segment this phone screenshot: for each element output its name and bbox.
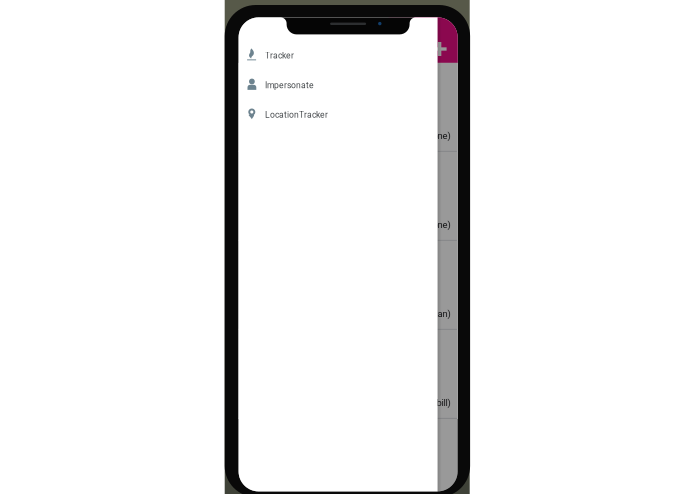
staticText: Impersonate: [265, 80, 314, 90]
button[interactable]: Tracker: [239, 40, 438, 69]
button[interactable]: Phone call (bill): [239, 330, 458, 419]
staticText: Water plants (Alan): [374, 308, 451, 319]
staticText: Phone call (bill): [390, 397, 451, 408]
staticText: Sleep time (ringtone): [367, 219, 451, 230]
button[interactable]: Water plants (Alan): [239, 241, 458, 330]
staticText: LocationTracker: [265, 110, 328, 120]
button[interactable]: Impersonate: [239, 69, 438, 99]
button[interactable]: LocationTracker: [239, 99, 438, 128]
staticText: Wake up (ringtone): [375, 130, 451, 141]
button[interactable]: Sleep time (ringtone): [239, 152, 458, 241]
staticText: Tracker: [265, 51, 294, 61]
button[interactable]: Add: [426, 35, 454, 63]
button[interactable]: Wake up (ringtone): [239, 63, 458, 152]
